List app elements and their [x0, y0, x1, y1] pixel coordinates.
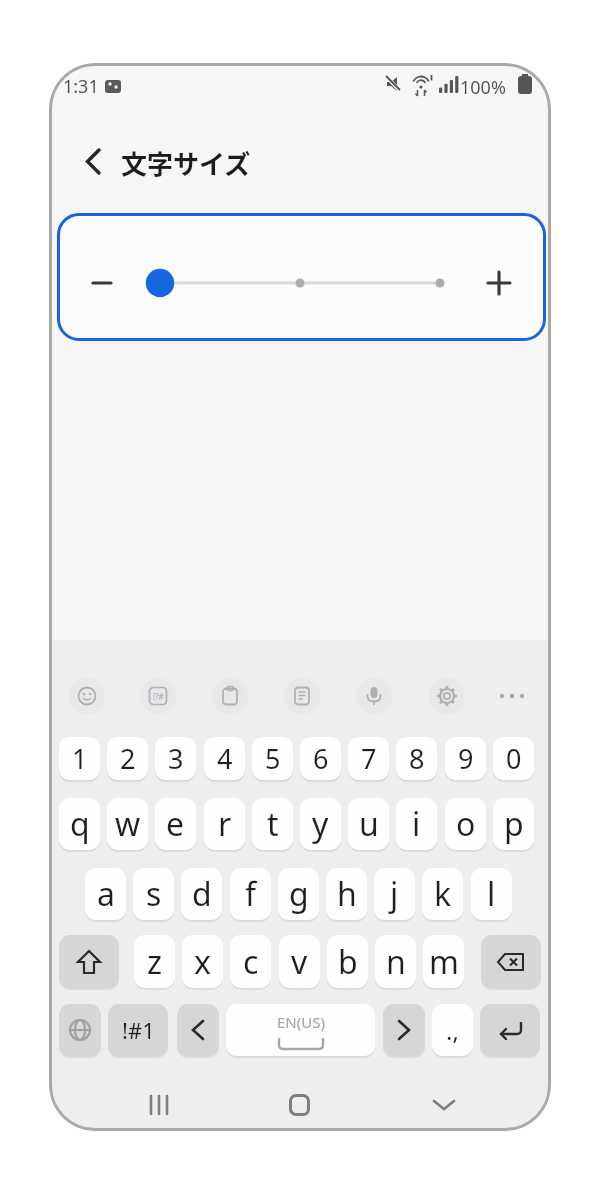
button[interactable]	[84, 148, 102, 175]
button[interactable]	[59, 935, 119, 988]
staticText: y	[312, 802, 329, 846]
button[interactable]	[356, 678, 392, 714]
button[interactable]: 5	[252, 737, 293, 780]
staticText: 3	[168, 740, 184, 777]
button[interactable]: !#1	[108, 1004, 168, 1056]
button[interactable]: 1	[59, 737, 100, 780]
staticText: o	[456, 802, 476, 846]
staticText: 文字サイズ	[121, 144, 251, 182]
button[interactable]	[212, 678, 248, 714]
staticText: .,	[446, 1014, 459, 1047]
button[interactable]: 2	[107, 737, 148, 780]
button[interactable]: q	[59, 798, 100, 850]
staticText: 1:31	[63, 74, 99, 99]
button[interactable]: w	[107, 798, 148, 850]
button[interactable]: 8	[396, 737, 437, 780]
button[interactable]	[177, 1004, 219, 1056]
button[interactable]: l	[471, 868, 512, 920]
staticText: a	[97, 872, 115, 916]
staticText: x	[194, 940, 211, 984]
button[interactable]: e	[155, 798, 196, 850]
staticText: p	[504, 802, 524, 846]
button[interactable]: g	[278, 868, 319, 920]
staticText: 9	[458, 740, 474, 777]
button[interactable]: 0	[493, 737, 534, 780]
button[interactable]: y	[300, 798, 341, 850]
button[interactable]: k	[422, 868, 463, 920]
staticText: g	[289, 872, 309, 916]
button[interactable]: 6	[300, 737, 341, 780]
staticText: z	[147, 940, 163, 984]
button[interactable]	[149, 1095, 173, 1115]
staticText: 0	[506, 740, 522, 777]
staticText: n	[386, 940, 406, 984]
staticText: 8	[409, 740, 425, 777]
button[interactable]: c	[230, 935, 271, 988]
button[interactable]: h	[326, 868, 367, 920]
staticText: e	[166, 802, 185, 846]
button[interactable]: 3	[155, 737, 196, 780]
staticText: u	[359, 802, 379, 846]
button[interactable]	[284, 678, 320, 714]
staticText: j	[390, 872, 399, 916]
button[interactable]: n	[375, 935, 416, 988]
staticText: EN(US)	[277, 1012, 325, 1032]
staticText: 2	[120, 740, 136, 777]
staticText: c	[243, 940, 259, 984]
staticText: h	[337, 872, 357, 916]
staticText: w	[115, 802, 141, 846]
button[interactable]	[57, 213, 546, 341]
staticText: q	[70, 802, 90, 846]
button[interactable]: v	[279, 935, 320, 988]
staticText: l	[487, 872, 496, 916]
staticText: t	[267, 802, 279, 846]
staticText: f	[245, 872, 257, 916]
staticText: b	[338, 940, 358, 984]
button[interactable]: b	[327, 935, 368, 988]
staticText: 4	[217, 740, 233, 777]
button[interactable]	[499, 693, 531, 699]
staticText: v	[291, 940, 308, 984]
staticText: !#1	[122, 1015, 155, 1045]
button[interactable]: 4	[204, 737, 245, 780]
button[interactable]	[59, 1004, 101, 1056]
button[interactable]: f	[230, 868, 271, 920]
button[interactable]	[289, 1094, 310, 1116]
button[interactable]: a	[85, 868, 126, 920]
staticText: d	[192, 872, 212, 916]
button[interactable]: x	[182, 935, 223, 988]
button[interactable]: !?#	[140, 678, 176, 714]
button[interactable]	[69, 678, 105, 714]
button[interactable]	[383, 1004, 425, 1056]
button[interactable]: 9	[445, 737, 486, 780]
button[interactable]	[480, 1004, 540, 1056]
button[interactable]: u	[348, 798, 389, 850]
button[interactable]: m	[423, 935, 464, 988]
staticText: k	[434, 872, 452, 916]
button[interactable]: EN(US)	[226, 1004, 375, 1056]
staticText: m	[429, 940, 459, 984]
staticText: r	[218, 802, 232, 846]
button[interactable]: s	[133, 868, 174, 920]
button[interactable]: r	[204, 798, 245, 850]
button[interactable]: o	[445, 798, 486, 850]
button[interactable]: d	[181, 868, 222, 920]
button[interactable]	[481, 935, 541, 988]
staticText: 100%	[460, 75, 506, 100]
button[interactable]: p	[493, 798, 534, 850]
button[interactable]: j	[374, 868, 415, 920]
button[interactable]: z	[134, 935, 175, 988]
staticText: i	[412, 802, 421, 846]
button[interactable]: 7	[348, 737, 389, 780]
staticText: 1	[72, 740, 88, 777]
button[interactable]: t	[252, 798, 293, 850]
button[interactable]: i	[396, 798, 437, 850]
staticText: 6	[313, 740, 329, 777]
button[interactable]	[429, 678, 465, 714]
staticText: !?#	[153, 691, 164, 702]
staticText: 7	[361, 740, 377, 777]
staticText: 5	[265, 740, 281, 777]
button[interactable]: .,	[432, 1004, 473, 1056]
staticText: s	[146, 872, 162, 916]
button[interactable]	[432, 1099, 456, 1111]
